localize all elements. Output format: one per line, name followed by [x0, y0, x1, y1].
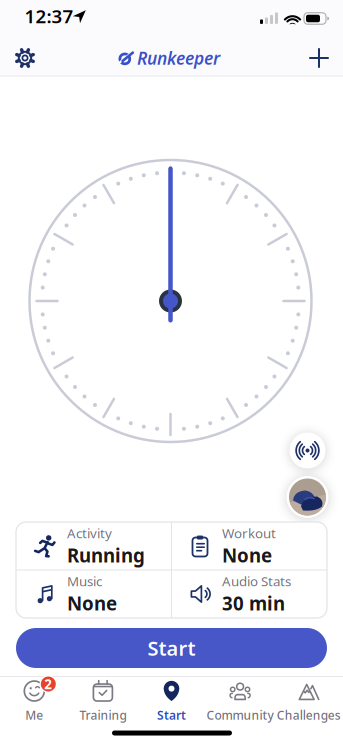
- staticText: Audio Stats: [222, 572, 291, 590]
- button[interactable]: Workout: [172, 522, 327, 570]
- button[interactable]: Start: [137, 678, 206, 724]
- button[interactable]: Shoe tracker: [286, 476, 328, 518]
- staticText: Runkeeper: [137, 46, 220, 69]
- staticText: Training: [79, 707, 126, 723]
- button[interactable]: Music: [17, 570, 172, 618]
- staticText: Music: [67, 572, 102, 590]
- button[interactable]: Activity: [17, 522, 172, 570]
- staticText: Challenges: [277, 707, 341, 723]
- button[interactable]: Training: [68, 678, 137, 724]
- staticText: None: [222, 543, 272, 568]
- button[interactable]: Add: [308, 47, 330, 69]
- staticText: 30 min: [222, 591, 285, 616]
- button[interactable]: Challenges: [274, 678, 343, 724]
- staticText: Start: [147, 635, 195, 661]
- button[interactable]: Community: [206, 678, 275, 724]
- button[interactable]: Settings: [13, 46, 37, 70]
- button[interactable]: Start: [16, 628, 327, 668]
- staticText: Start: [157, 707, 186, 723]
- staticText: Community: [207, 707, 274, 723]
- staticText: 12:37: [24, 4, 73, 28]
- button[interactable]: 2: [0, 678, 69, 724]
- button[interactable]: Audio Stats: [172, 570, 327, 618]
- staticText: Running: [67, 543, 145, 568]
- staticText: Me: [25, 707, 43, 723]
- staticText: 2: [44, 675, 52, 693]
- staticText: None: [67, 591, 117, 616]
- staticText: Activity: [67, 524, 112, 542]
- button[interactable]: Live tracking: [289, 432, 325, 468]
- staticText: Workout: [222, 524, 276, 542]
